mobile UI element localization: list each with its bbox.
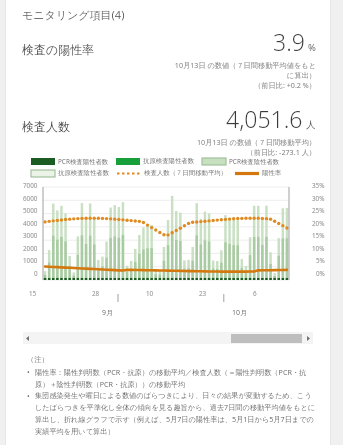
staticText: PCR検査陰性者数 — [229, 157, 280, 166]
staticText: 35% — [312, 181, 325, 190]
staticText: 23 — [199, 289, 207, 298]
staticText: • — [27, 391, 30, 401]
staticText: （前日比: -273.1 人） — [22, 147, 316, 157]
staticText: 検査の陽性率 — [22, 42, 95, 57]
staticText: 5000 — [23, 206, 38, 215]
staticText: 人 — [306, 119, 316, 131]
staticText: 5% — [316, 256, 325, 265]
staticText: 集団感染発生や曜日による数値のばらつきにより、日々の結果が変動するため、こうした… — [35, 391, 317, 436]
staticText: 30% — [312, 194, 325, 203]
staticText: 10% — [312, 244, 325, 253]
staticText: 10月13日 の数値（７日間移動平均値をもと に算出） — [22, 60, 316, 80]
staticText: 0% — [316, 269, 325, 278]
staticText: 0 — [34, 269, 38, 278]
staticText: 7000 — [23, 181, 38, 190]
staticText: PCR検査陽性者数 — [58, 157, 109, 166]
staticText: 4000 — [23, 219, 38, 228]
staticText: % — [308, 41, 316, 54]
staticText: 15% — [312, 231, 325, 240]
staticText: 25% — [312, 206, 325, 215]
staticText: 6000 — [23, 194, 38, 203]
staticText: 10月13日 の数値（７日間移動平均） — [22, 137, 316, 147]
staticText: 検査人数（７日間移動平均） — [144, 169, 228, 177]
staticText: 15 — [29, 289, 37, 298]
button[interactable]: Scroll chart horizontally — [23, 332, 313, 344]
staticText: 6 — [253, 289, 257, 298]
staticText: 28 — [92, 289, 100, 298]
staticText: 検査人数 — [22, 119, 70, 134]
staticText: モニタリング項目(4) — [22, 7, 125, 22]
staticText: 抗原検査陽性者数 — [143, 157, 195, 165]
staticText: 2000 — [23, 244, 38, 253]
staticText: 1000 — [23, 256, 38, 265]
staticText: 10 — [146, 289, 154, 298]
staticText: （前日比: +0.2 %） — [22, 80, 316, 90]
staticText: 10月 — [232, 308, 248, 318]
staticText: 陽性率：陽性判明数（PCR・抗原）の移動平均／検査人数（＝陽性判明数（PCR・抗… — [35, 367, 317, 389]
staticText: 20% — [312, 219, 325, 228]
staticText: 3000 — [23, 231, 38, 240]
staticText: 抗原検査陰性者数 — [58, 169, 110, 177]
staticText: （注） — [27, 355, 49, 364]
staticText: 4,051.6 — [226, 103, 303, 134]
staticText: 9月 — [102, 308, 114, 318]
staticText: 陽性率 — [262, 169, 282, 177]
staticText: 3.9 — [273, 26, 305, 57]
staticText: • — [27, 367, 30, 377]
